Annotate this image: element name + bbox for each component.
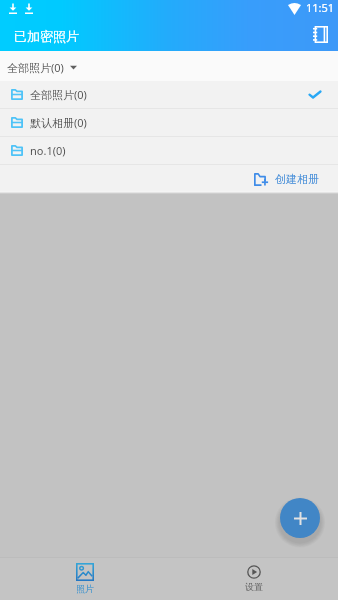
staticText: 全部照片(0) — [30, 87, 87, 102]
staticText: 默认相册(0) — [30, 115, 87, 130]
staticText: 设置 — [245, 581, 263, 592]
button[interactable]: 全部照片(0) — [0, 81, 338, 108]
button[interactable]: Albums — [307, 21, 333, 47]
staticText: 全部照片(0) — [7, 60, 64, 75]
button[interactable]: 设置 — [169, 557, 338, 600]
staticText: 已加密照片 — [14, 28, 79, 44]
staticText: 照片 — [76, 583, 94, 594]
button[interactable]: 照片 — [0, 557, 169, 600]
button[interactable]: 创建相册 — [245, 167, 338, 189]
staticText: 11:51 — [306, 0, 335, 15]
staticText: 创建相册 — [275, 172, 319, 186]
button[interactable]: no.1(0) — [0, 137, 338, 164]
button[interactable]: Add — [280, 498, 320, 538]
button[interactable]: 全部照片(0) — [0, 51, 338, 81]
staticText: no.1(0) — [30, 143, 66, 158]
button[interactable]: 默认相册(0) — [0, 109, 338, 136]
